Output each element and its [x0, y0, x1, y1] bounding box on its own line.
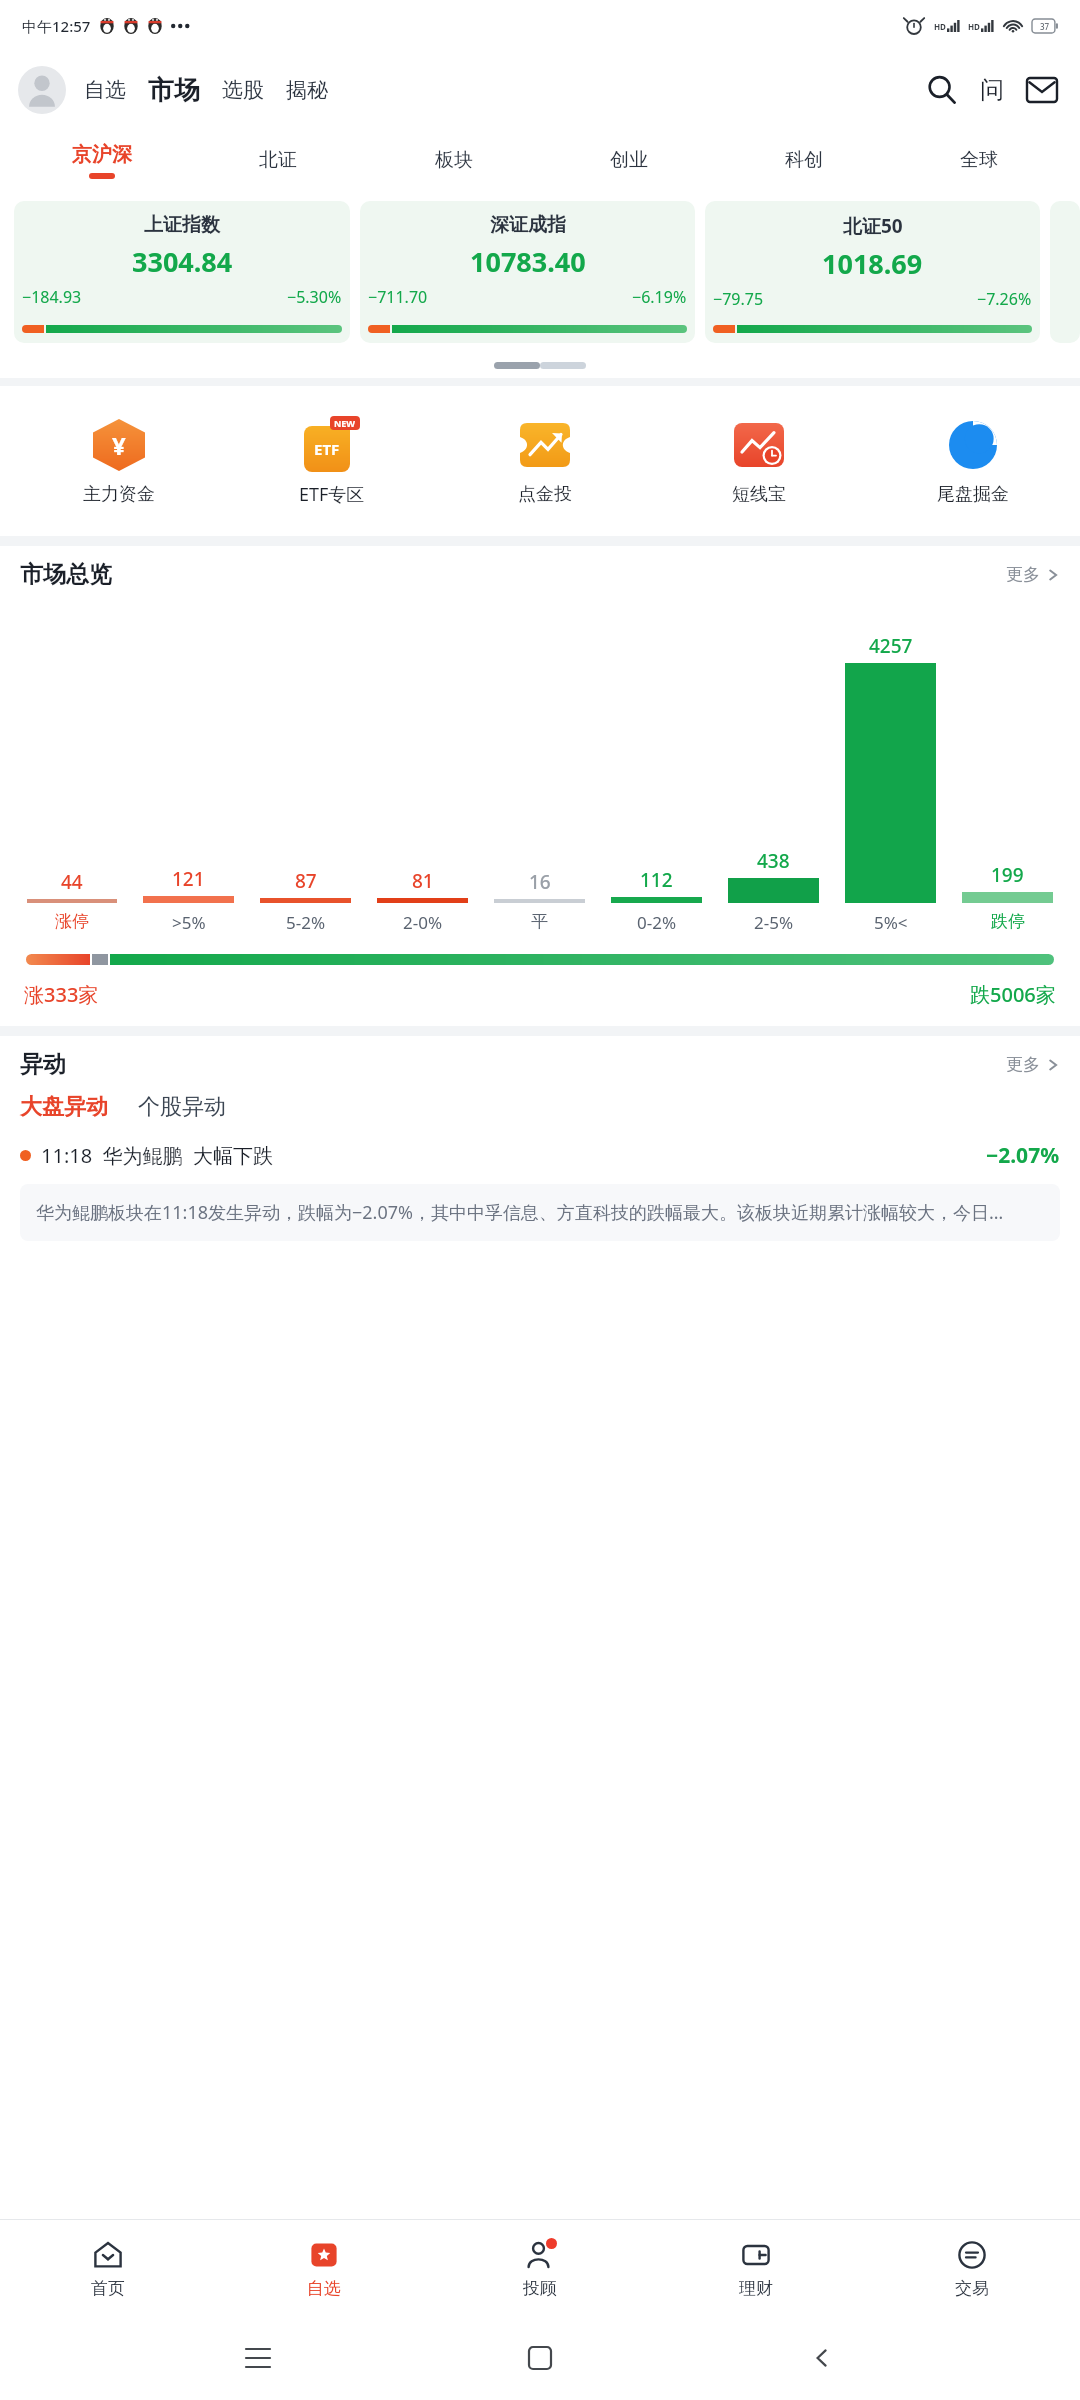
button[interactable]: Home [516, 2334, 564, 2382]
staticText: 主力资金 [83, 483, 155, 506]
staticText: 438 [757, 848, 790, 874]
staticText: 11:18 华为鲲鹏 大幅下跌 [41, 1142, 273, 1169]
button[interactable]: 深证成指 [360, 201, 695, 343]
button[interactable]: 11:18 华为鲲鹏 大幅下跌 [20, 1141, 1060, 1170]
button[interactable]: 首页 [0, 2220, 216, 2316]
button[interactable]: 个股异动 [138, 1093, 226, 1121]
button[interactable] [18, 66, 66, 114]
staticText: −2.07% [986, 1141, 1060, 1170]
staticText: 首页 [91, 2278, 125, 2299]
staticText: 3304.84 [132, 243, 233, 280]
staticText: 112 [640, 867, 673, 893]
button[interactable]: 科创 [716, 128, 891, 192]
button[interactable]: 上证指数 [14, 201, 350, 343]
staticText: 个股异动 [138, 1093, 226, 1121]
button[interactable]: 全球 [891, 128, 1066, 192]
button[interactable]: 尾盘掘金 [866, 417, 1080, 506]
staticText: 尾盘掘金 [937, 483, 1009, 506]
staticText: 平 [531, 911, 548, 932]
staticText: 短线宝 [732, 483, 786, 506]
button[interactable]: 更多 [1006, 564, 1060, 585]
button[interactable]: Messages [1022, 70, 1062, 110]
button[interactable]: 板块 [366, 128, 541, 192]
staticText: −79.75 [713, 288, 764, 310]
staticText: 北证50 [843, 213, 903, 239]
staticText: −6.19% [632, 286, 687, 308]
staticText: 中午12:57 [22, 16, 91, 36]
staticText: 创业 [610, 148, 648, 172]
staticText: 选股 [222, 77, 264, 103]
staticText: 上证指数 [144, 213, 220, 237]
button[interactable]: Ask [972, 70, 1012, 110]
staticText: 涨停 [55, 911, 89, 932]
button[interactable]: 自选 [216, 2220, 432, 2316]
button[interactable]: 市场 [144, 74, 204, 107]
staticText: ¥ [112, 429, 126, 462]
button[interactable]: 揭秘 [282, 77, 332, 103]
button[interactable]: 京沪深 [14, 128, 190, 192]
staticText: 4257 [869, 633, 913, 659]
button[interactable]: 北证 [190, 128, 366, 192]
staticText: 北证 [259, 148, 297, 172]
staticText: 涨333家 [24, 981, 99, 1008]
staticText: 跌停 [991, 911, 1025, 932]
staticText: 5-2% [286, 911, 326, 934]
staticText: −5.30% [287, 286, 342, 308]
button[interactable]: 北证50 [705, 201, 1040, 343]
button[interactable]: 自选 [80, 77, 130, 103]
staticText: 121 [172, 866, 205, 892]
staticText: 10783.40 [470, 243, 586, 280]
staticText: 市场总览 [20, 560, 112, 589]
staticText: 更多 [1006, 564, 1040, 585]
button[interactable]: 短线宝 [652, 417, 866, 506]
staticText: 更多 [1006, 1054, 1040, 1075]
staticText: 交易 [955, 2278, 989, 2299]
staticText: 科创 [785, 148, 823, 172]
staticText: HD [968, 21, 980, 32]
button[interactable]: Back [798, 2334, 846, 2382]
staticText: 199 [991, 862, 1024, 888]
button[interactable]: 更多 [1006, 1054, 1060, 1075]
staticText: −184.93 [22, 286, 82, 308]
staticText: 0-2% [637, 911, 677, 934]
staticText: 全球 [960, 148, 998, 172]
staticText: 5%< [874, 911, 908, 934]
staticText: 点金投 [518, 483, 572, 506]
button[interactable]: ¥ [12, 417, 225, 506]
staticText: 自选 [307, 2278, 341, 2299]
staticText: 87 [295, 868, 317, 894]
button[interactable]: Search [922, 70, 962, 110]
button[interactable]: 理财 [648, 2220, 864, 2316]
staticText: 自选 [84, 77, 126, 103]
staticText: 异动 [20, 1050, 66, 1079]
staticText: 2-5% [754, 911, 794, 934]
staticText: 81 [412, 868, 434, 894]
button[interactable]: 点金投 [438, 417, 652, 506]
staticText: 深证成指 [490, 213, 566, 237]
button[interactable]: 交易 [864, 2220, 1080, 2316]
button[interactable]: Recents [234, 2334, 282, 2382]
staticText: >5% [172, 911, 206, 934]
staticText: 问 [980, 75, 1004, 105]
staticText: 37 [1040, 21, 1050, 32]
staticText: 投顾 [523, 2278, 557, 2299]
staticText: HD [934, 21, 946, 32]
button[interactable]: 选股 [218, 77, 268, 103]
staticText: 44 [61, 869, 83, 895]
staticText: 板块 [435, 148, 473, 172]
staticText: 2-0% [403, 911, 443, 934]
staticText: −711.70 [368, 286, 428, 308]
staticText: 华为鲲鹏板块在11:18发生异动，跌幅为−2.07%，其中中孚信息、方直科技的跌… [36, 1200, 1004, 1225]
staticText: NEW [334, 417, 356, 429]
staticText: 跌5006家 [970, 981, 1056, 1008]
staticText: 市场 [148, 74, 200, 107]
button[interactable]: 大盘异动 [20, 1093, 108, 1121]
staticText: 京沪深 [72, 142, 132, 167]
button[interactable]: 投顾 [432, 2220, 648, 2316]
staticText: −7.26% [977, 288, 1032, 310]
button[interactable]: ETF [225, 416, 438, 507]
staticText: 1018.69 [822, 245, 923, 282]
button[interactable]: 创业 [541, 128, 716, 192]
staticText: ETF专区 [299, 482, 365, 507]
staticText: 大盘异动 [20, 1093, 108, 1121]
